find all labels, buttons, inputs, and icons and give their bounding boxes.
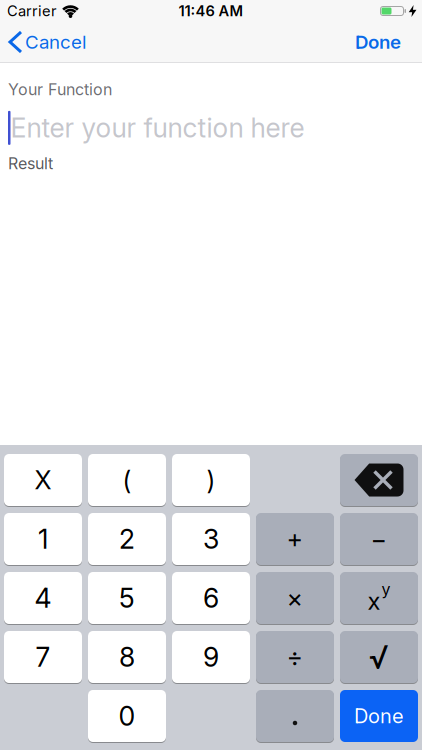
button[interactable]: )	[172, 454, 250, 506]
staticText: X	[34, 465, 51, 495]
button[interactable]: 0	[88, 690, 166, 742]
button[interactable]: −	[340, 513, 418, 565]
staticText: ×	[286, 583, 303, 613]
staticText: 8	[119, 641, 135, 673]
button[interactable]	[340, 454, 418, 506]
staticText: 2	[119, 523, 135, 555]
staticText: Done	[355, 31, 401, 53]
staticText: 0	[118, 700, 135, 732]
staticText: 7	[35, 641, 50, 673]
staticText: )	[206, 465, 215, 495]
button[interactable]: ÷	[256, 631, 334, 683]
button[interactable]: 5	[88, 572, 166, 624]
staticText: 5	[119, 582, 135, 614]
button[interactable]: √	[340, 631, 418, 683]
button[interactable]: Cancel	[0, 31, 87, 53]
staticText: +	[286, 524, 303, 554]
button[interactable]: X	[4, 454, 82, 506]
button[interactable]: 3	[172, 513, 250, 565]
staticText: 6	[203, 582, 219, 614]
button[interactable]: 1	[4, 513, 82, 565]
button[interactable]: 6	[172, 572, 250, 624]
button[interactable]: 2	[88, 513, 166, 565]
staticText: Done	[354, 704, 404, 728]
staticText: (	[122, 465, 131, 495]
button[interactable]: (	[88, 454, 166, 506]
button[interactable]: 8	[88, 631, 166, 683]
staticText: 3	[203, 523, 219, 555]
button[interactable]: Done	[340, 690, 418, 742]
button[interactable]: Done	[355, 31, 422, 53]
button[interactable]: ×	[256, 572, 334, 624]
button[interactable]: 7	[4, 631, 82, 683]
staticText: x	[367, 587, 380, 615]
button[interactable]	[256, 690, 334, 742]
button[interactable]: 4	[4, 572, 82, 624]
staticText: √	[369, 638, 389, 676]
staticText: Carrier	[7, 2, 57, 20]
staticText: ÷	[286, 642, 303, 672]
staticText: 4	[34, 582, 51, 614]
button[interactable]: +	[256, 513, 334, 565]
button[interactable]: Enter your function here	[8, 108, 414, 148]
staticText: 1	[38, 523, 48, 555]
staticText: −	[370, 524, 387, 554]
staticText: 11:46 AM	[178, 2, 243, 20]
button[interactable]: 9	[172, 631, 250, 683]
staticText: y	[381, 580, 390, 599]
staticText: Your Function	[8, 80, 112, 99]
staticText: Enter your function here	[10, 112, 304, 144]
staticText: Cancel	[25, 31, 87, 53]
staticText: 9	[203, 641, 219, 673]
staticText: Result	[8, 154, 53, 173]
button[interactable]: x	[340, 572, 418, 624]
